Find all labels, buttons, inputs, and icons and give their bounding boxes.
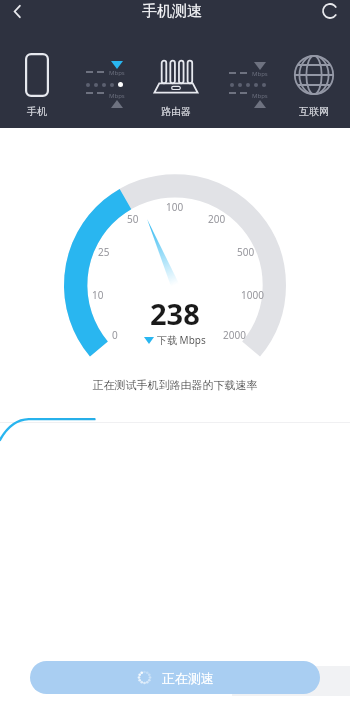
staticText: 路由器 [161, 105, 191, 118]
staticText: 1000 [241, 288, 264, 302]
button[interactable]: 互联网 [278, 51, 350, 118]
staticText: 正在测试手机到路由器的下载速率 [0, 378, 350, 392]
staticText: 2000 [223, 328, 246, 342]
button[interactable]: 正在测速 [30, 661, 320, 694]
staticText: 25 [98, 245, 110, 259]
staticText: 0 [112, 328, 118, 342]
staticText: Mbps [252, 92, 268, 100]
staticText: 100 [166, 200, 184, 214]
staticText: Mbps [109, 92, 125, 100]
button[interactable]: 路由器 [135, 51, 217, 118]
staticText: 手机 [27, 105, 47, 118]
button[interactable]: Back [0, 0, 34, 22]
button[interactable]: Refresh [310, 0, 350, 22]
staticText: 200 [208, 212, 226, 226]
staticText: 50 [127, 212, 139, 226]
staticText: Mbps [252, 70, 268, 78]
staticText: 手机测速 [34, 2, 310, 21]
staticText: 下载 Mbps [157, 333, 206, 347]
button[interactable]: 手机 [0, 51, 74, 118]
staticText: 互联网 [299, 105, 329, 118]
staticText: Mbps [109, 69, 125, 77]
staticText: 238 [150, 294, 200, 333]
staticText: 10 [92, 288, 104, 302]
staticText: 500 [237, 245, 255, 259]
staticText: 正在测速 [162, 670, 214, 686]
